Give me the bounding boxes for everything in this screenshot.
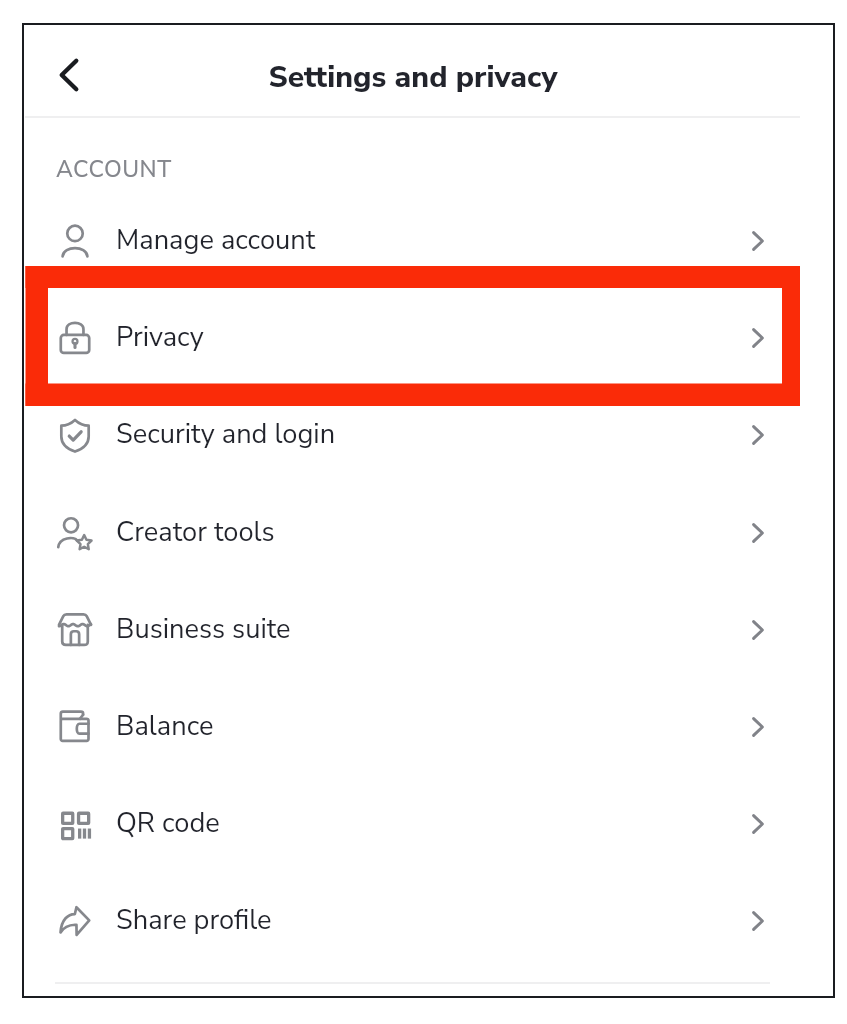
staticText: QR code	[116, 805, 220, 842]
staticText: Share profile	[116, 902, 272, 939]
staticText: ACCOUNT	[56, 154, 172, 185]
staticText: Settings and privacy	[268, 57, 558, 98]
button[interactable]: Manage account	[25, 192, 832, 289]
button[interactable]: Share profile	[25, 872, 832, 969]
button[interactable]: Business suite	[25, 581, 832, 678]
staticText: Manage account	[116, 222, 316, 259]
staticText: Creator tools	[116, 514, 275, 551]
staticText: Security and login	[116, 416, 336, 453]
button[interactable]: Back	[40, 46, 98, 104]
button[interactable]: Balance	[25, 678, 832, 775]
button[interactable]: Security and login	[25, 386, 832, 483]
staticText: Balance	[116, 708, 214, 745]
button[interactable]: Privacy	[25, 289, 832, 386]
staticText: Privacy	[116, 319, 204, 356]
staticText: Business suite	[116, 611, 291, 648]
button[interactable]: QR code	[25, 775, 832, 872]
button[interactable]: Creator tools	[25, 484, 832, 581]
